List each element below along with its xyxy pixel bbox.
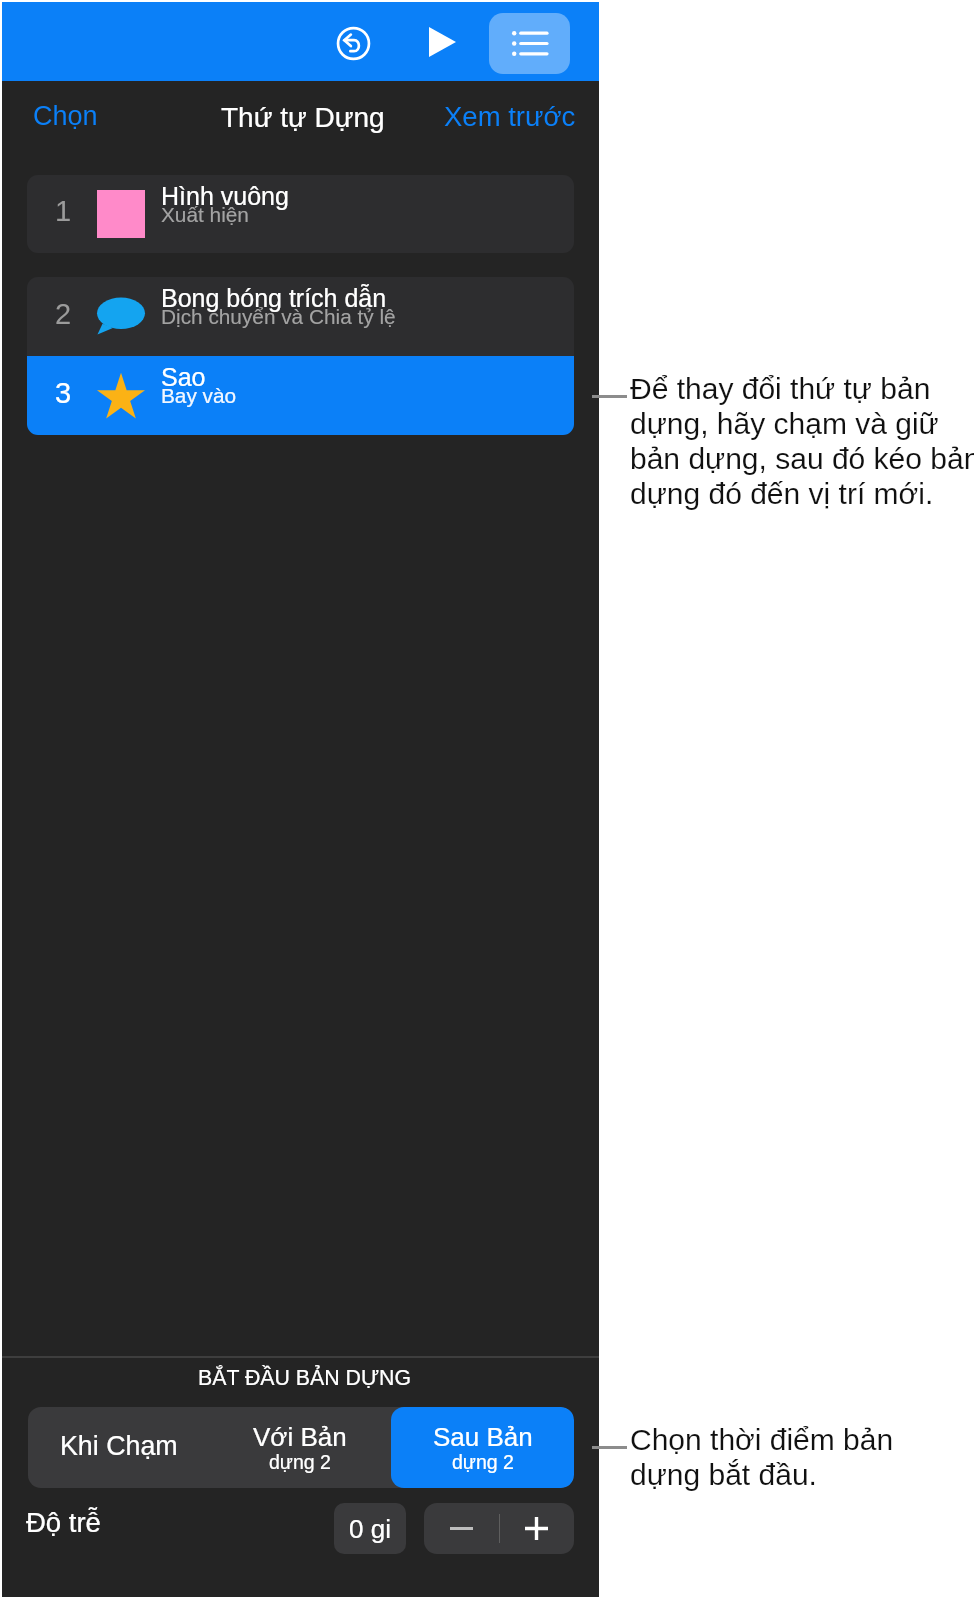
staticText: Bong bóng trích dẫn [161, 284, 387, 312]
staticText: 1 [55, 195, 72, 227]
staticText: Sau Bản [433, 1422, 533, 1451]
button[interactable]: Build order list [489, 13, 570, 74]
button[interactable]: Khi Chạm [28, 1407, 209, 1488]
staticText: Xem trước [444, 101, 576, 132]
staticText: Thứ tự Dựng [221, 102, 385, 133]
staticText: Chọn [33, 101, 98, 131]
button[interactable]: Undo [321, 11, 386, 75]
staticText: Sao [161, 363, 206, 391]
staticText: Chọn thời điểm bản dựng bắt đầu. [630, 1423, 894, 1491]
button[interactable]: Play [410, 13, 474, 71]
staticText: 2 [55, 298, 72, 330]
staticText: Dịch chuyển và Chia tỷ lệ [161, 305, 396, 328]
button[interactable]: Chọn [18, 91, 113, 141]
staticText: dựng 2 [452, 1451, 514, 1473]
staticText: Độ trễ [26, 1507, 101, 1538]
button[interactable]: 3 [27, 356, 574, 435]
button[interactable]: 1 [27, 175, 574, 253]
staticText: BẮT ĐẦU BẢN DỰNG [198, 1366, 412, 1390]
staticText: Bay vào [161, 384, 237, 407]
staticText: Khi Chạm [60, 1431, 178, 1461]
staticText: Xuất hiện [161, 203, 249, 226]
button[interactable]: Increase delay [500, 1503, 573, 1554]
staticText: Với Bản [253, 1422, 347, 1451]
staticText: dựng 2 [269, 1451, 331, 1473]
button[interactable]: 0 gi [334, 1503, 406, 1554]
button[interactable]: 2 [27, 277, 574, 356]
staticText: 0 gi [349, 1514, 391, 1543]
button[interactable]: Xem trước [429, 91, 591, 142]
staticText: Hình vuông [161, 182, 289, 210]
button[interactable]: Sau Bản [391, 1407, 574, 1488]
staticText: 3 [55, 377, 72, 409]
button[interactable]: Decrease delay [424, 1503, 499, 1554]
button[interactable]: Với Bản [209, 1407, 391, 1488]
staticText: Để thay đổi thứ tự bản dựng, hãy chạm và… [630, 372, 974, 510]
